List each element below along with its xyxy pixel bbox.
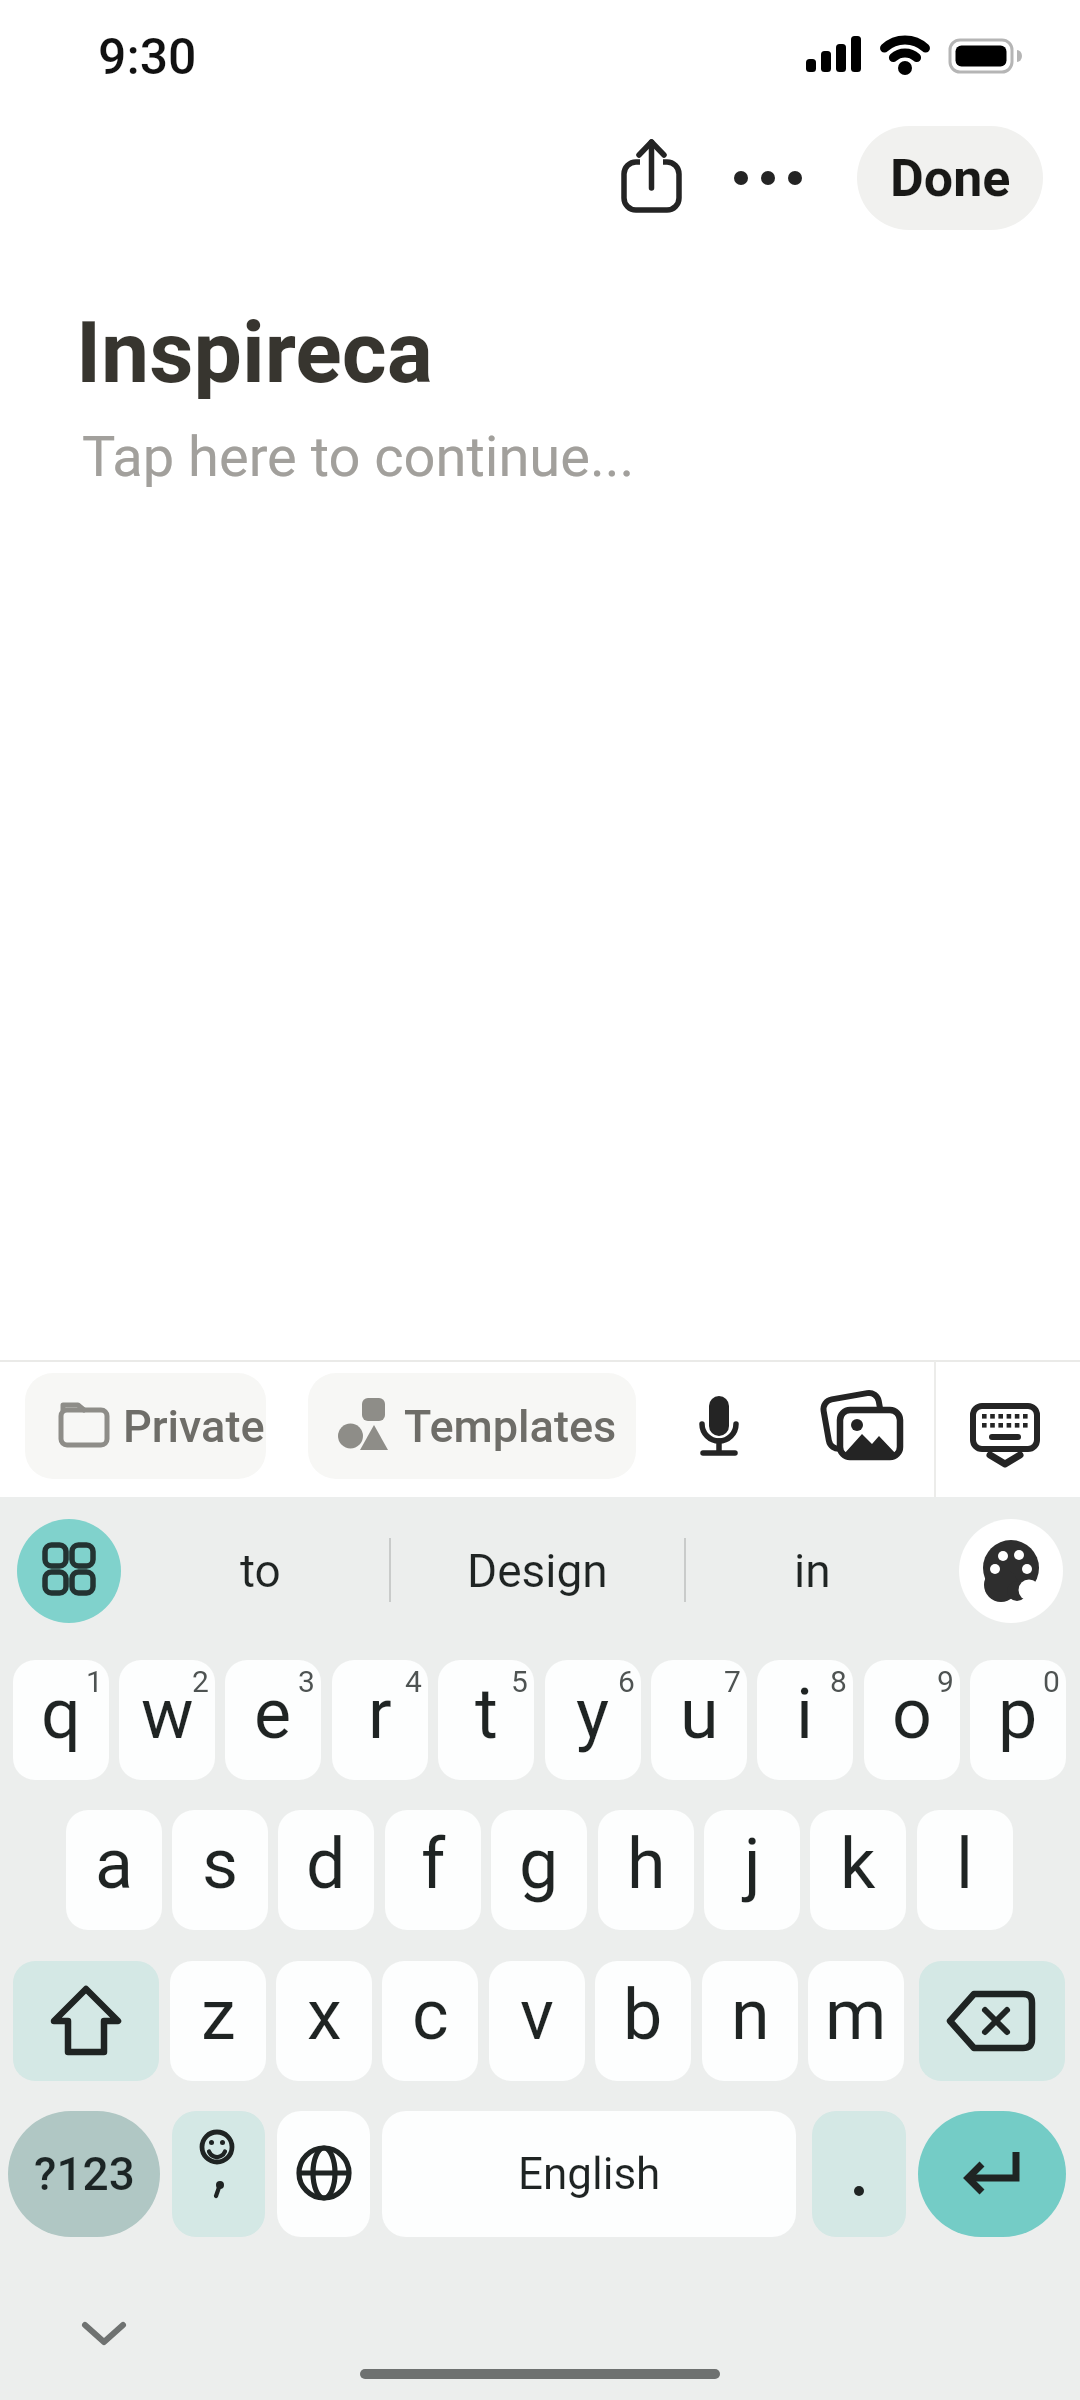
staticText: t: [475, 1673, 498, 1755]
staticText: 6: [618, 1664, 635, 1699]
staticText: z: [201, 1974, 236, 2056]
staticText: j: [744, 1823, 761, 1905]
button[interactable]: o: [864, 1660, 960, 1780]
staticText: Templates: [404, 1400, 617, 1453]
button[interactable]: [680, 1380, 758, 1472]
button[interactable]: l: [917, 1810, 1013, 1930]
staticText: y: [576, 1673, 610, 1755]
staticText: b: [623, 1974, 663, 2056]
button[interactable]: English: [382, 2111, 796, 2237]
button[interactable]: z: [170, 1961, 266, 2081]
button[interactable]: u: [651, 1660, 747, 1780]
staticText: p: [998, 1673, 1038, 1755]
staticText: in: [794, 1544, 831, 1598]
staticText: a: [95, 1823, 134, 1905]
button[interactable]: [812, 2111, 906, 2237]
button[interactable]: [919, 1961, 1065, 2081]
button[interactable]: r: [332, 1660, 428, 1780]
button[interactable]: n: [702, 1961, 798, 2081]
staticText: g: [519, 1823, 559, 1905]
button[interactable]: m: [808, 1961, 904, 2081]
staticText: i: [796, 1673, 814, 1755]
button[interactable]: [960, 1392, 1050, 1476]
button[interactable]: Private: [25, 1373, 266, 1479]
button[interactable]: Design: [402, 1521, 672, 1621]
button[interactable]: j: [704, 1810, 800, 1930]
button[interactable]: [816, 1386, 908, 1466]
staticText: Design: [467, 1544, 608, 1598]
button[interactable]: f: [385, 1810, 481, 1930]
staticText: f: [421, 1823, 446, 1905]
staticText: ?123: [34, 2147, 135, 2201]
staticText: l: [956, 1823, 974, 1905]
button[interactable]: ?123: [8, 2111, 160, 2237]
staticText: Private: [123, 1400, 265, 1453]
staticText: Done: [890, 148, 1011, 209]
staticText: 7: [724, 1664, 741, 1699]
staticText: e: [254, 1673, 292, 1755]
staticText: 9: [937, 1664, 954, 1699]
staticText: r: [368, 1673, 392, 1755]
button[interactable]: k: [810, 1810, 906, 1930]
staticText: 2: [192, 1664, 209, 1699]
button[interactable]: x: [276, 1961, 372, 2081]
staticText: 3: [298, 1664, 315, 1699]
button[interactable]: v: [489, 1961, 585, 2081]
staticText: 0: [1043, 1664, 1060, 1699]
staticText: c: [412, 1974, 449, 2056]
staticText: 4: [405, 1664, 422, 1699]
button[interactable]: in: [702, 1521, 922, 1621]
staticText: w: [141, 1673, 194, 1755]
staticText: k: [840, 1823, 876, 1905]
button[interactable]: [959, 1519, 1063, 1623]
button[interactable]: i: [757, 1660, 853, 1780]
button[interactable]: e: [225, 1660, 321, 1780]
button[interactable]: [172, 2111, 265, 2237]
staticText: Tap here to continue...: [82, 424, 635, 490]
staticText: n: [731, 1974, 770, 2056]
staticText: 9:30: [98, 28, 197, 87]
button[interactable]: [17, 1519, 121, 1623]
button[interactable]: [277, 2111, 370, 2237]
staticText: 5: [511, 1664, 528, 1699]
button[interactable]: s: [172, 1810, 268, 1930]
staticText: m: [825, 1974, 887, 2056]
staticText: 8: [830, 1664, 847, 1699]
staticText: u: [680, 1673, 719, 1755]
button[interactable]: h: [598, 1810, 694, 1930]
staticText: v: [520, 1974, 554, 2056]
staticText: s: [202, 1823, 239, 1905]
button[interactable]: q: [13, 1660, 109, 1780]
staticText: 1: [86, 1664, 103, 1699]
button[interactable]: Done: [857, 126, 1043, 230]
staticText: q: [41, 1673, 81, 1755]
staticText: o: [892, 1673, 932, 1755]
button[interactable]: y: [545, 1660, 641, 1780]
staticText: d: [306, 1823, 346, 1905]
button[interactable]: to: [150, 1521, 370, 1621]
button[interactable]: Templates: [308, 1373, 636, 1479]
button[interactable]: c: [382, 1961, 478, 2081]
button[interactable]: [606, 122, 696, 226]
button[interactable]: g: [491, 1810, 587, 1930]
button[interactable]: [918, 2111, 1066, 2237]
button[interactable]: w: [119, 1660, 215, 1780]
staticText: English: [518, 2148, 661, 2200]
staticText: h: [627, 1823, 666, 1905]
button[interactable]: a: [66, 1810, 162, 1930]
button[interactable]: [13, 1961, 159, 2081]
staticText: to: [240, 1544, 281, 1598]
button[interactable]: p: [970, 1660, 1066, 1780]
button[interactable]: [720, 140, 816, 216]
staticText: Inspireca: [76, 302, 433, 403]
staticText: x: [307, 1974, 342, 2056]
button[interactable]: d: [278, 1810, 374, 1930]
button[interactable]: b: [595, 1961, 691, 2081]
button[interactable]: t: [438, 1660, 534, 1780]
